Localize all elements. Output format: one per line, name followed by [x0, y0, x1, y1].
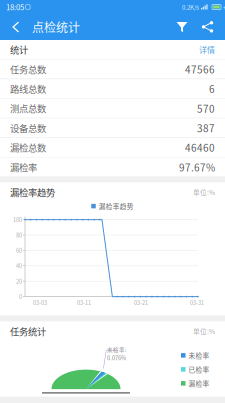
staticText: 6	[209, 81, 215, 96]
staticText: 20	[16, 277, 22, 285]
staticText: 未检率:	[107, 346, 127, 354]
staticText: 漏检率趋势	[99, 201, 134, 211]
staticText: 0.2K/s	[182, 3, 199, 11]
staticText: 97.67%	[179, 160, 215, 174]
staticText: 点检统计	[32, 18, 80, 36]
staticText: 漏检率趋势	[10, 185, 55, 199]
staticText: 570	[197, 101, 215, 116]
staticText: 单位:%	[193, 326, 215, 336]
staticText: 0.076%	[107, 354, 126, 362]
button[interactable]: 路线总数	[0, 79, 225, 98]
staticText: 46460	[185, 140, 215, 155]
staticText: 漏检总数	[10, 141, 46, 154]
staticText: 漏检率	[10, 160, 37, 174]
staticText: 40	[16, 262, 22, 270]
button[interactable]: Filter	[169, 14, 195, 40]
staticText: 03-21	[134, 298, 148, 307]
button[interactable]: 设备总数	[0, 118, 225, 137]
staticText: 设备总数	[10, 121, 46, 135]
button[interactable]: Share	[195, 14, 221, 40]
staticText: 03-31	[190, 298, 204, 307]
staticText: 80	[16, 231, 22, 239]
staticText: 387	[197, 121, 215, 135]
staticText: 任务统计	[10, 324, 46, 338]
button[interactable]: 漏检总数	[0, 138, 225, 157]
button[interactable]: 漏检率	[0, 158, 225, 177]
button[interactable]: 详情	[199, 44, 215, 55]
staticText: 18:05	[6, 1, 24, 13]
button[interactable]: 测点总数	[0, 99, 225, 118]
staticText: 已检率	[188, 364, 209, 374]
staticText: 未检率	[188, 350, 209, 360]
staticText: 0	[19, 292, 22, 301]
button[interactable]: Back	[4, 14, 28, 40]
staticText: 路线总数	[10, 82, 46, 95]
staticText: +	[223, 2, 225, 12]
button[interactable]: 任务总数	[0, 60, 225, 79]
staticText: 详情	[199, 44, 215, 55]
staticText: 47566	[185, 62, 215, 76]
staticText: 单位:%	[193, 187, 215, 197]
staticText: 测点总数	[10, 101, 46, 115]
staticText: 漏检率	[188, 378, 209, 388]
staticText: 03-11	[77, 298, 91, 307]
staticText: 统计	[10, 43, 28, 56]
staticText: 03-03	[33, 298, 47, 307]
staticText: 任务总数	[10, 62, 46, 76]
staticText: 100	[13, 215, 22, 224]
staticText: 60	[16, 246, 22, 254]
